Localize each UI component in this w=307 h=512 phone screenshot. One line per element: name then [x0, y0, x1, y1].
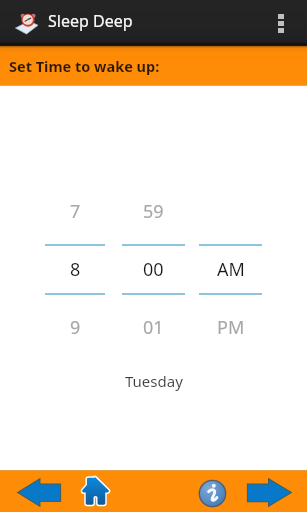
button[interactable]: 7	[45, 186, 105, 236]
staticText: 01	[143, 315, 164, 340]
button[interactable]: 9	[45, 295, 105, 360]
staticText: Sleep Deep	[48, 10, 133, 32]
button[interactable]: More options	[268, 0, 307, 46]
button[interactable]: Info	[198, 470, 227, 512]
staticText: 7	[70, 199, 81, 224]
button[interactable]: 8	[45, 246, 105, 293]
button[interactable]: Back	[0, 470, 78, 512]
button[interactable]: PM	[199, 295, 262, 360]
staticText: 8	[70, 257, 81, 282]
staticText: AM	[217, 257, 245, 282]
staticText: 59	[143, 199, 164, 224]
button[interactable]: 59	[122, 186, 185, 236]
staticText: PM	[217, 315, 245, 340]
button[interactable]: Next	[227, 470, 307, 512]
button[interactable]: 00	[122, 246, 185, 293]
staticText: 9	[70, 315, 81, 340]
button[interactable]: AM	[199, 246, 262, 293]
button[interactable]: Home	[78, 470, 113, 512]
staticText: 00	[143, 257, 164, 282]
button[interactable]: 01	[122, 295, 185, 360]
staticText: Tuesday	[125, 371, 183, 391]
staticText: Set Time to wake up:	[9, 56, 160, 76]
